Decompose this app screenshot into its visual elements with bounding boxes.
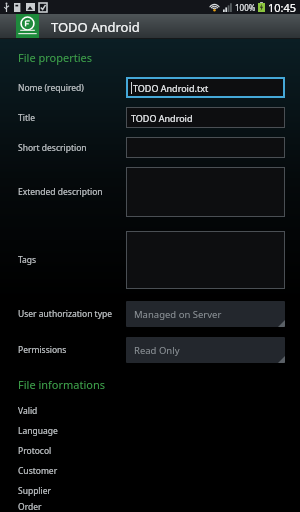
staticText: File informations (18, 377, 106, 392)
staticText: Managed on Server (134, 308, 222, 321)
staticText: Order (18, 501, 42, 512)
staticText: Nome (required) (18, 82, 84, 94)
button[interactable] (126, 137, 285, 158)
button[interactable]: App icon, navigate up (16, 14, 39, 39)
staticText: User authorization type (18, 308, 113, 320)
staticText: Short description (18, 142, 87, 154)
button[interactable]: Order (0, 501, 300, 512)
staticText: 100% (235, 2, 256, 13)
staticText: Read Only (134, 344, 180, 357)
staticText: Language (18, 425, 58, 437)
button[interactable]: Read Only (126, 337, 285, 363)
button[interactable]: TODO Android.txt (126, 77, 285, 98)
button[interactable]: Supplier (0, 481, 300, 501)
staticText: 10:45 (268, 0, 297, 14)
staticText: TODO Android (51, 18, 140, 36)
staticText: File properties (18, 50, 92, 65)
button[interactable] (126, 167, 285, 217)
staticText: Title (18, 112, 35, 124)
button[interactable] (126, 231, 285, 289)
button[interactable]: Protocol (0, 441, 300, 461)
staticText: Tags (18, 254, 37, 266)
staticText: TODO Android.txt (133, 82, 209, 94)
button[interactable]: Managed on Server (126, 301, 285, 327)
button[interactable]: Valid (0, 401, 300, 421)
staticText: Protocol (18, 445, 52, 457)
staticText: Customer (18, 465, 58, 477)
button[interactable]: Language (0, 421, 300, 441)
staticText: Valid (18, 405, 38, 417)
staticText: Supplier (18, 485, 52, 497)
staticText: TODO Android (131, 112, 193, 124)
button[interactable]: Customer (0, 461, 300, 481)
staticText: Permissions (18, 344, 67, 356)
button[interactable]: TODO Android (126, 107, 285, 128)
staticText: Extended description (18, 186, 103, 198)
